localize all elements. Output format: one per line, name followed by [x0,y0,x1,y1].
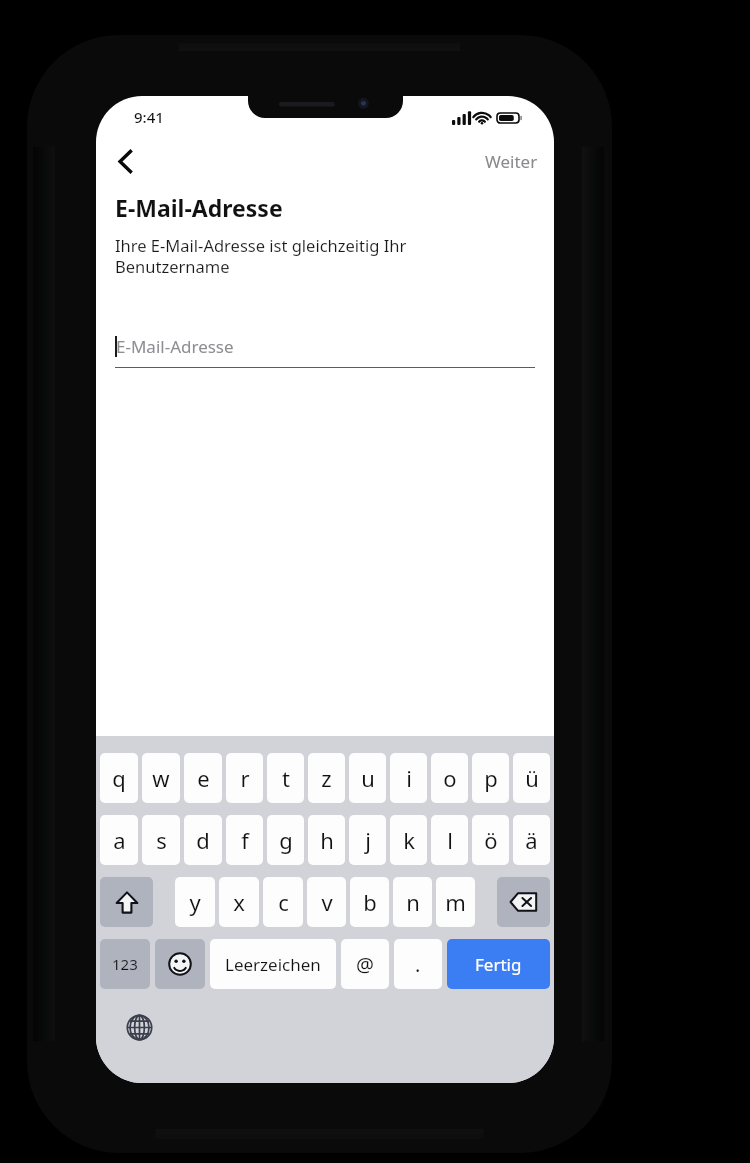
button[interactable]: x [219,877,259,927]
staticText: Ihre E-Mail-Adresse ist gleichzeitig Ihr… [115,234,407,278]
button[interactable]: n [393,877,432,927]
staticText: o [443,763,457,793]
staticText: e [197,763,210,793]
staticText: n [406,887,420,917]
staticText: p [484,763,498,793]
staticText: 123 [112,954,138,974]
button[interactable]: Emoji [155,939,205,989]
staticText: 9:41 [134,107,164,127]
button[interactable]: Leerzeichen [210,939,336,989]
staticText: i [406,763,412,793]
staticText: Weiter [485,150,538,173]
staticText: Leerzeichen [225,953,321,976]
button[interactable]: Weiter [479,144,544,179]
staticText: q [112,763,126,793]
button[interactable]: g [267,815,304,865]
button[interactable]: . [394,939,442,989]
button[interactable]: c [263,877,303,927]
staticText: h [320,825,334,855]
staticText: g [279,825,293,855]
button[interactable]: s [142,815,180,865]
button[interactable]: d [184,815,222,865]
staticText: r [240,763,250,793]
button[interactable]: j [349,815,386,865]
staticText: j [365,825,371,855]
staticText: y [189,887,201,917]
button[interactable]: t [267,753,304,803]
button[interactable]: ü [513,753,550,803]
staticText: b [363,887,377,917]
button[interactable]: E-Mail-Adresse [115,324,535,368]
staticText: f [241,825,249,855]
staticText: ö [484,825,498,855]
button[interactable]: Fertig [447,939,550,989]
button[interactable]: u [349,753,386,803]
button[interactable]: z [308,753,345,803]
staticText: z [321,763,332,793]
button[interactable]: ä [513,815,550,865]
staticText: c [278,887,289,917]
button[interactable]: p [472,753,509,803]
button[interactable]: @ [341,939,389,989]
button[interactable]: Löschen [497,877,550,927]
button[interactable]: q [100,753,138,803]
button[interactable]: b [350,877,389,927]
button[interactable]: i [390,753,427,803]
staticText: a [113,825,126,855]
staticText: l [447,825,453,855]
staticText: w [152,763,170,793]
button[interactable]: e [184,753,222,803]
staticText: d [196,825,210,855]
button[interactable]: r [226,753,263,803]
staticText: ü [525,763,539,793]
staticText: t [282,763,290,793]
button[interactable]: v [307,877,346,927]
staticText: k [403,825,415,855]
button[interactable]: f [226,815,263,865]
button[interactable]: w [142,753,180,803]
staticText: Fertig [475,953,522,976]
button[interactable]: o [431,753,468,803]
staticText: ä [525,825,538,855]
button[interactable]: y [175,877,215,927]
button[interactable]: Zurück [103,140,147,182]
button[interactable]: ö [472,815,509,865]
staticText: @ [356,951,374,978]
staticText: x [233,887,245,917]
staticText: m [445,887,466,917]
staticText: E-Mail-Adresse [115,192,283,223]
button[interactable]: Umschalttaste [100,877,153,927]
button[interactable]: Sprache wechseln [121,1009,157,1045]
staticText: s [156,825,167,855]
staticText: u [361,763,375,793]
button[interactable]: k [390,815,427,865]
button[interactable]: m [436,877,475,927]
button[interactable]: a [100,815,138,865]
staticText: . [415,951,421,978]
staticText: E-Mail-Adresse [116,335,234,358]
button[interactable]: l [431,815,468,865]
button[interactable]: 123 [100,939,150,989]
staticText: v [321,887,333,917]
button[interactable]: h [308,815,345,865]
